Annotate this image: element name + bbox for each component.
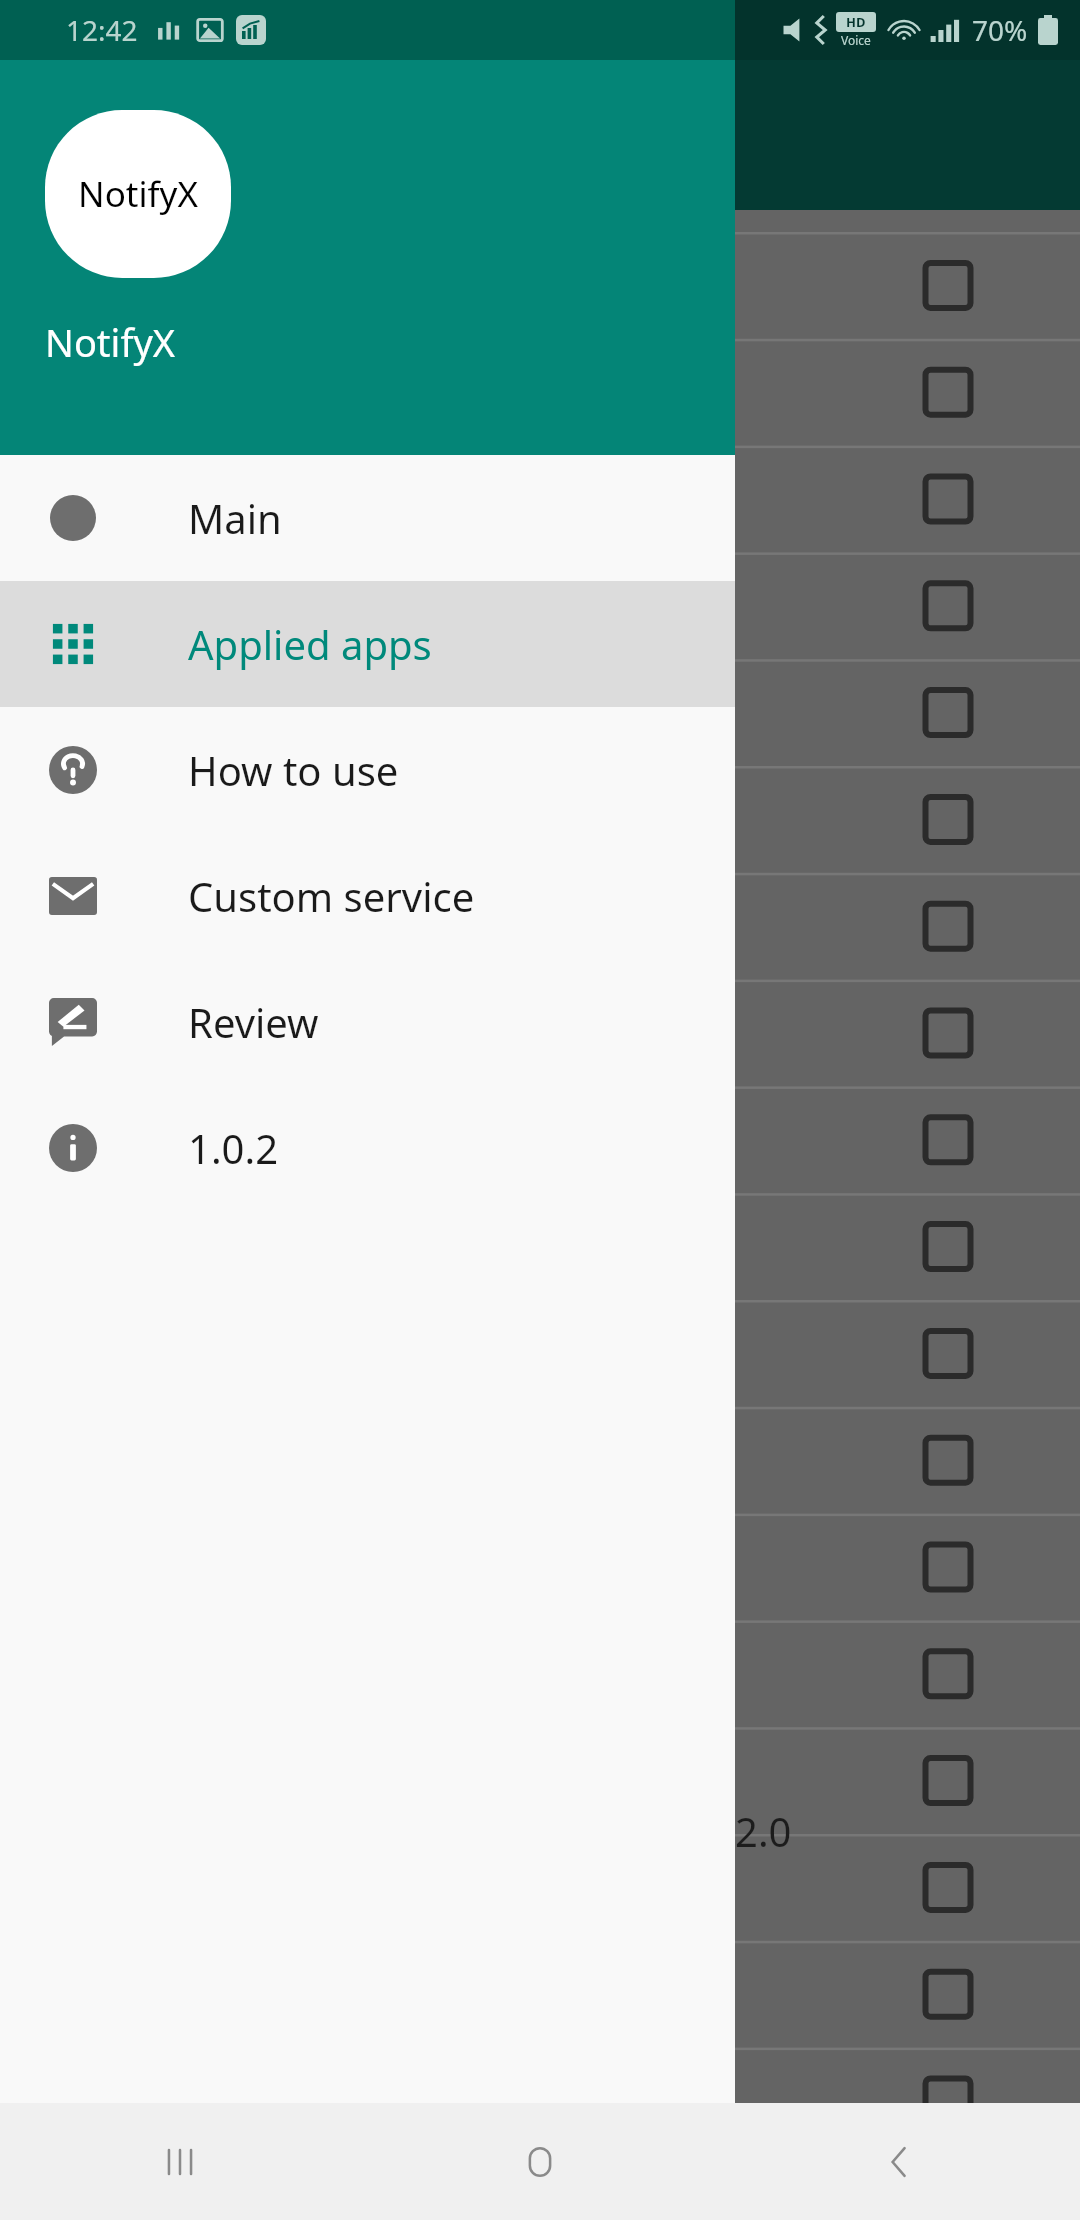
- staticText: NotifyX: [78, 170, 198, 218]
- staticText: 2.0: [735, 1804, 792, 1858]
- button[interactable]: Review: [0, 959, 735, 1085]
- staticText: Custom service: [188, 869, 475, 923]
- staticText: Main: [188, 491, 282, 545]
- staticText: How to use: [188, 743, 399, 797]
- button[interactable]: Custom service: [0, 833, 735, 959]
- button[interactable]: Applied apps: [0, 581, 735, 707]
- staticText: 1.0.2: [188, 1121, 279, 1175]
- button[interactable]: 1.0.2: [0, 1085, 735, 1211]
- button[interactable]: Home: [360, 2103, 720, 2220]
- button[interactable]: Back: [720, 2103, 1080, 2220]
- staticText: Voice: [841, 32, 871, 48]
- staticText: HD: [846, 13, 866, 31]
- staticText: Review: [188, 995, 319, 1049]
- staticText: 70%: [972, 11, 1028, 49]
- button[interactable]: Recents: [0, 2103, 360, 2220]
- button[interactable]: Main: [0, 455, 735, 581]
- staticText: Applied apps: [188, 617, 432, 671]
- staticText: NotifyX: [45, 316, 176, 368]
- button[interactable]: How to use: [0, 707, 735, 833]
- staticText: 12:42: [66, 11, 138, 49]
